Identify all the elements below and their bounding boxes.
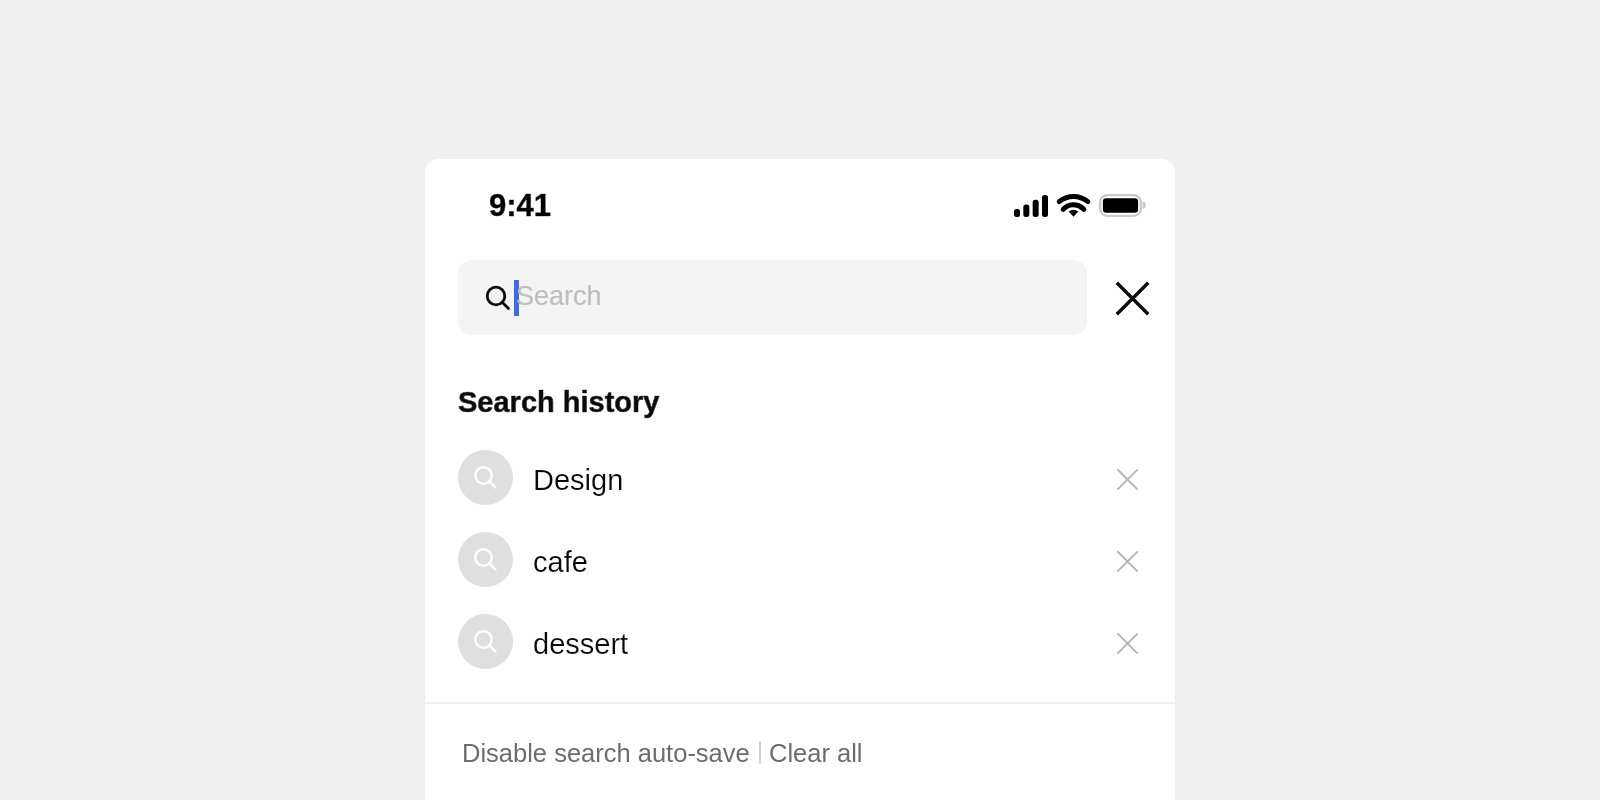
staticText: Design	[533, 464, 624, 496]
button[interactable]: Disable search auto-save	[462, 739, 750, 767]
staticText: Clear all	[769, 739, 863, 767]
staticText: 9:41	[489, 188, 552, 223]
button[interactable]: Remove Design from search history	[1103, 455, 1151, 503]
button[interactable]: dessert	[425, 600, 1175, 682]
button[interactable]: Design	[425, 436, 1175, 518]
button[interactable]: Remove dessert from search history	[1103, 619, 1151, 667]
staticText: 9:41	[489, 188, 552, 223]
staticText: cafe	[533, 546, 588, 578]
staticText: Search history	[458, 386, 660, 418]
staticText: Search	[516, 281, 602, 311]
staticText: Search history	[458, 386, 660, 418]
button[interactable]: Remove cafe from search history	[1103, 537, 1151, 585]
button[interactable]: Clear all	[769, 739, 863, 767]
button[interactable]: cafe	[425, 518, 1175, 600]
staticText: dessert	[533, 628, 629, 660]
button[interactable]: Search	[458, 260, 1087, 335]
button[interactable]: Close search	[1102, 268, 1162, 328]
staticText: Disable search auto-save	[462, 739, 750, 767]
